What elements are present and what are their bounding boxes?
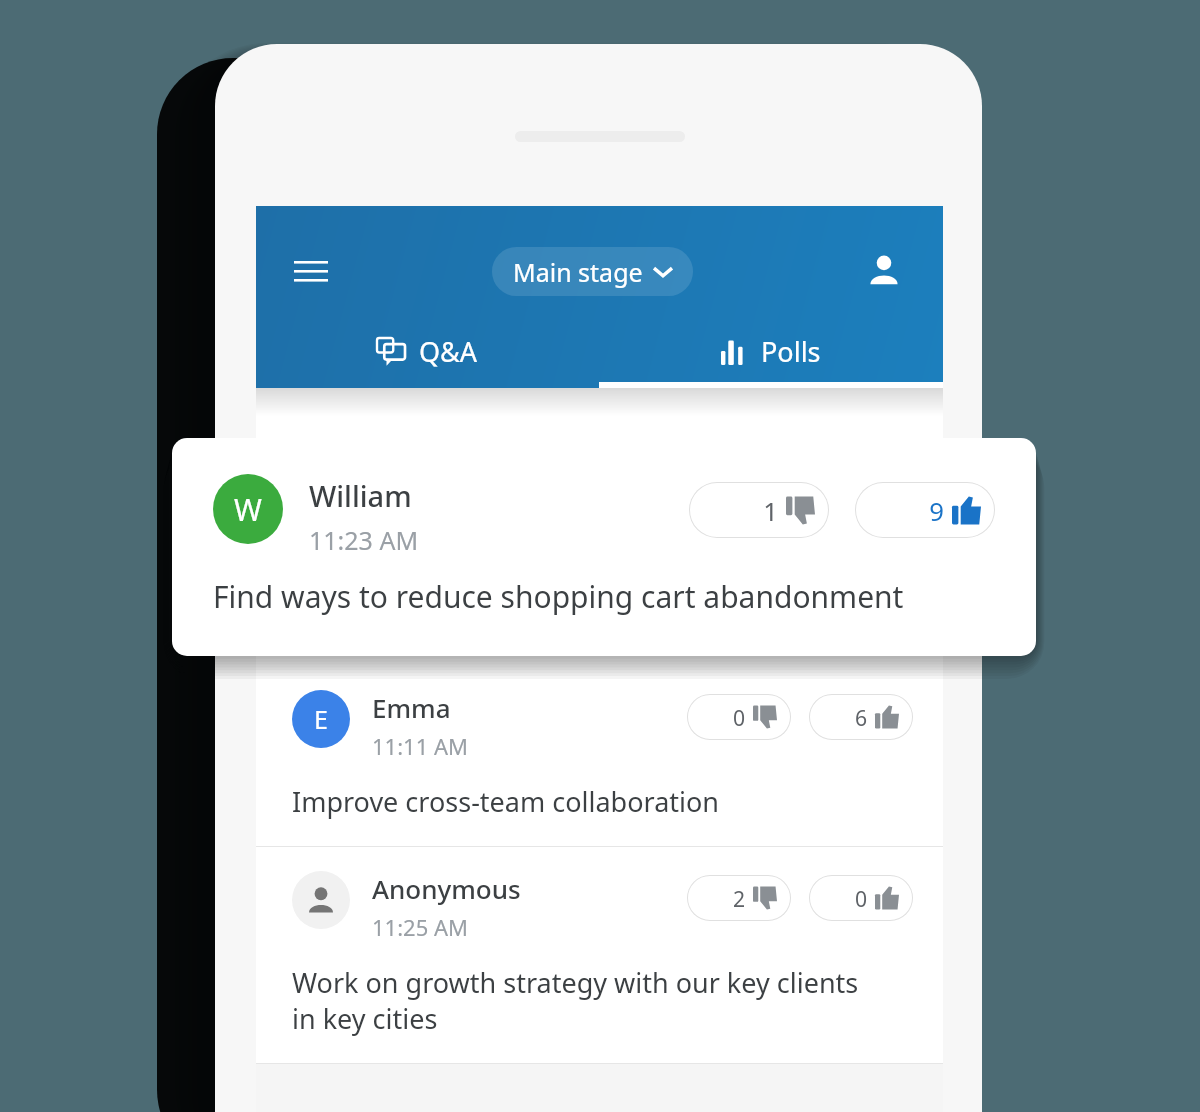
staticText: 2 <box>701 884 745 913</box>
button[interactable]: Polls <box>599 314 943 388</box>
staticText: 1 <box>703 493 778 528</box>
button[interactable]: 0 <box>809 875 913 921</box>
staticText: 0 <box>823 884 867 913</box>
button[interactable]: Q&A <box>256 314 599 388</box>
button[interactable]: Profile <box>856 242 912 298</box>
staticText: Improve cross-team collaboration <box>292 783 863 820</box>
staticText: Work on growth strategy with our key cli… <box>292 964 863 1037</box>
staticText: 11:11 AM <box>372 731 468 761</box>
staticText: 6 <box>823 703 867 732</box>
button[interactable]: 2 <box>687 875 791 921</box>
staticText: 11:23 AM <box>309 523 419 557</box>
staticText: 11:25 AM <box>372 912 468 942</box>
staticText: Emma <box>372 690 451 725</box>
button[interactable]: Menu <box>284 244 338 298</box>
staticText: Polls <box>761 333 821 370</box>
button[interactable]: 9 <box>855 482 995 538</box>
staticText: E <box>314 702 328 736</box>
staticText: Anonymous <box>372 871 521 906</box>
button[interactable]: Anonymous <box>256 847 943 1063</box>
staticText: Main stage <box>513 255 643 289</box>
button[interactable]: 1 <box>689 482 829 538</box>
staticText: 0 <box>701 703 745 732</box>
staticText: Find ways to reduce shopping cart abando… <box>213 576 904 617</box>
staticText: Q&A <box>419 333 478 370</box>
button[interactable]: Main stage <box>492 247 693 296</box>
button[interactable]: E <box>256 666 943 846</box>
button[interactable]: W <box>172 438 1036 656</box>
button[interactable]: 0 <box>687 694 791 740</box>
button[interactable]: 6 <box>809 694 913 740</box>
staticText: William <box>309 476 412 515</box>
staticText: W <box>234 489 262 530</box>
staticText: 9 <box>869 493 944 528</box>
